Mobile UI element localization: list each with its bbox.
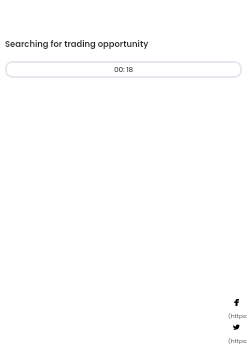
button[interactable]: Facebook — [230, 296, 242, 308]
staticText: 00: 18 — [114, 64, 134, 74]
button[interactable]: (https:// — [228, 337, 247, 345]
button[interactable]: (https:// — [228, 312, 247, 320]
button[interactable]: Twitter — [230, 321, 242, 333]
button[interactable]: 00: 18 — [5, 61, 242, 78]
staticText: Searching for trading opportunity — [5, 38, 149, 50]
